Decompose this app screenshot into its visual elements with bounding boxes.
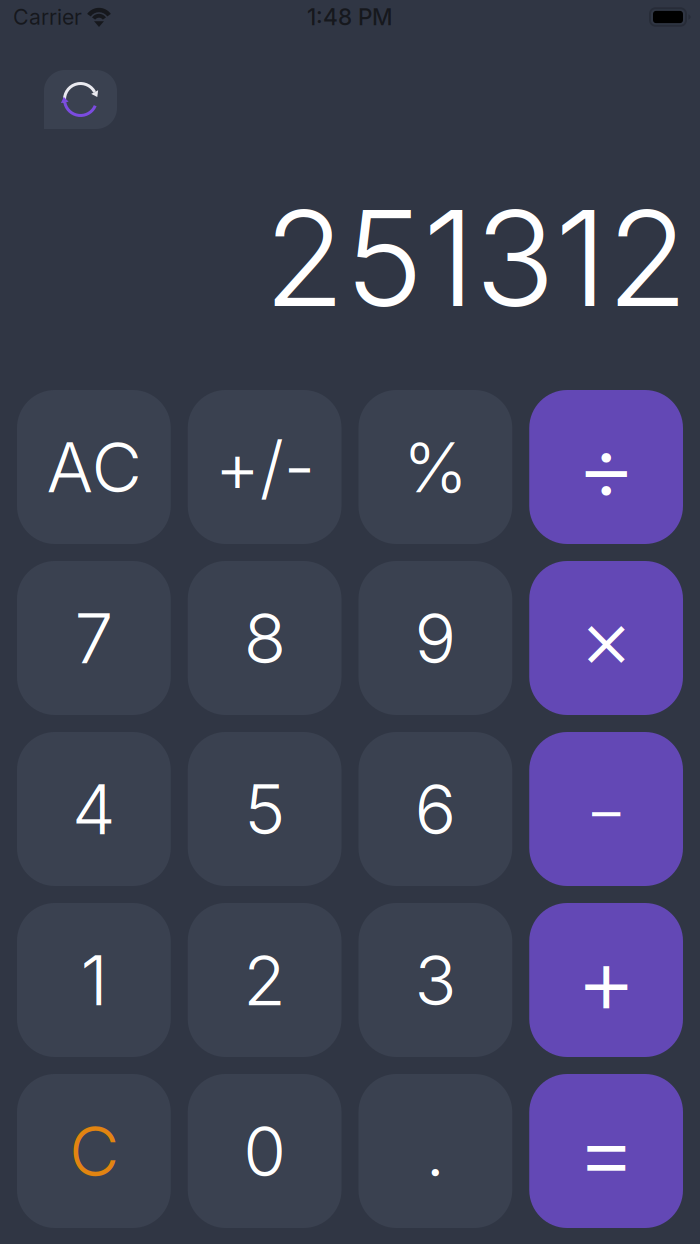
staticText: 2 (243, 938, 286, 1022)
staticText: 4 (72, 767, 116, 851)
staticText: 1 (80, 938, 107, 1022)
button[interactable]: 4 (17, 732, 171, 886)
button[interactable]: 8 (188, 561, 342, 715)
staticText: 251312 (264, 178, 688, 338)
button[interactable]: 9 (358, 561, 512, 715)
staticText: 7 (74, 596, 113, 680)
button[interactable]: AC (17, 390, 171, 544)
staticText: 1:48 PM (307, 3, 393, 31)
staticText: 0 (243, 1109, 286, 1193)
button[interactable]: − (529, 732, 683, 886)
staticText: 3 (414, 938, 456, 1022)
button[interactable]: × (529, 561, 683, 715)
button[interactable]: 1 (17, 903, 171, 1057)
button[interactable]: 6 (358, 732, 512, 886)
staticText: +/- (215, 425, 315, 509)
staticText: 6 (414, 767, 456, 851)
staticText: × (579, 588, 633, 688)
staticText: % (403, 425, 468, 509)
staticText: − (585, 770, 627, 848)
button[interactable]: 5 (188, 732, 342, 886)
button[interactable]: Refresh (44, 70, 117, 129)
staticText: + (576, 923, 637, 1036)
button[interactable]: = (529, 1074, 683, 1228)
button[interactable]: 2 (188, 903, 342, 1057)
staticText: 8 (244, 596, 286, 680)
staticText: = (576, 1094, 637, 1207)
staticText: Carrier (13, 4, 82, 30)
staticText: 5 (244, 767, 285, 851)
button[interactable]: 0 (188, 1074, 342, 1228)
button[interactable]: + (529, 903, 683, 1057)
staticText: 9 (414, 596, 456, 680)
staticText: C (69, 1109, 119, 1193)
button[interactable]: . (358, 1074, 512, 1228)
button[interactable]: +/- (188, 390, 342, 544)
button[interactable]: % (358, 390, 512, 544)
staticText: AC (46, 425, 141, 509)
button[interactable]: C (17, 1074, 171, 1228)
button[interactable]: ÷ (529, 390, 683, 544)
button[interactable]: 7 (17, 561, 171, 715)
staticText: . (425, 1109, 445, 1193)
staticText: ÷ (576, 410, 637, 523)
button[interactable]: 3 (358, 903, 512, 1057)
